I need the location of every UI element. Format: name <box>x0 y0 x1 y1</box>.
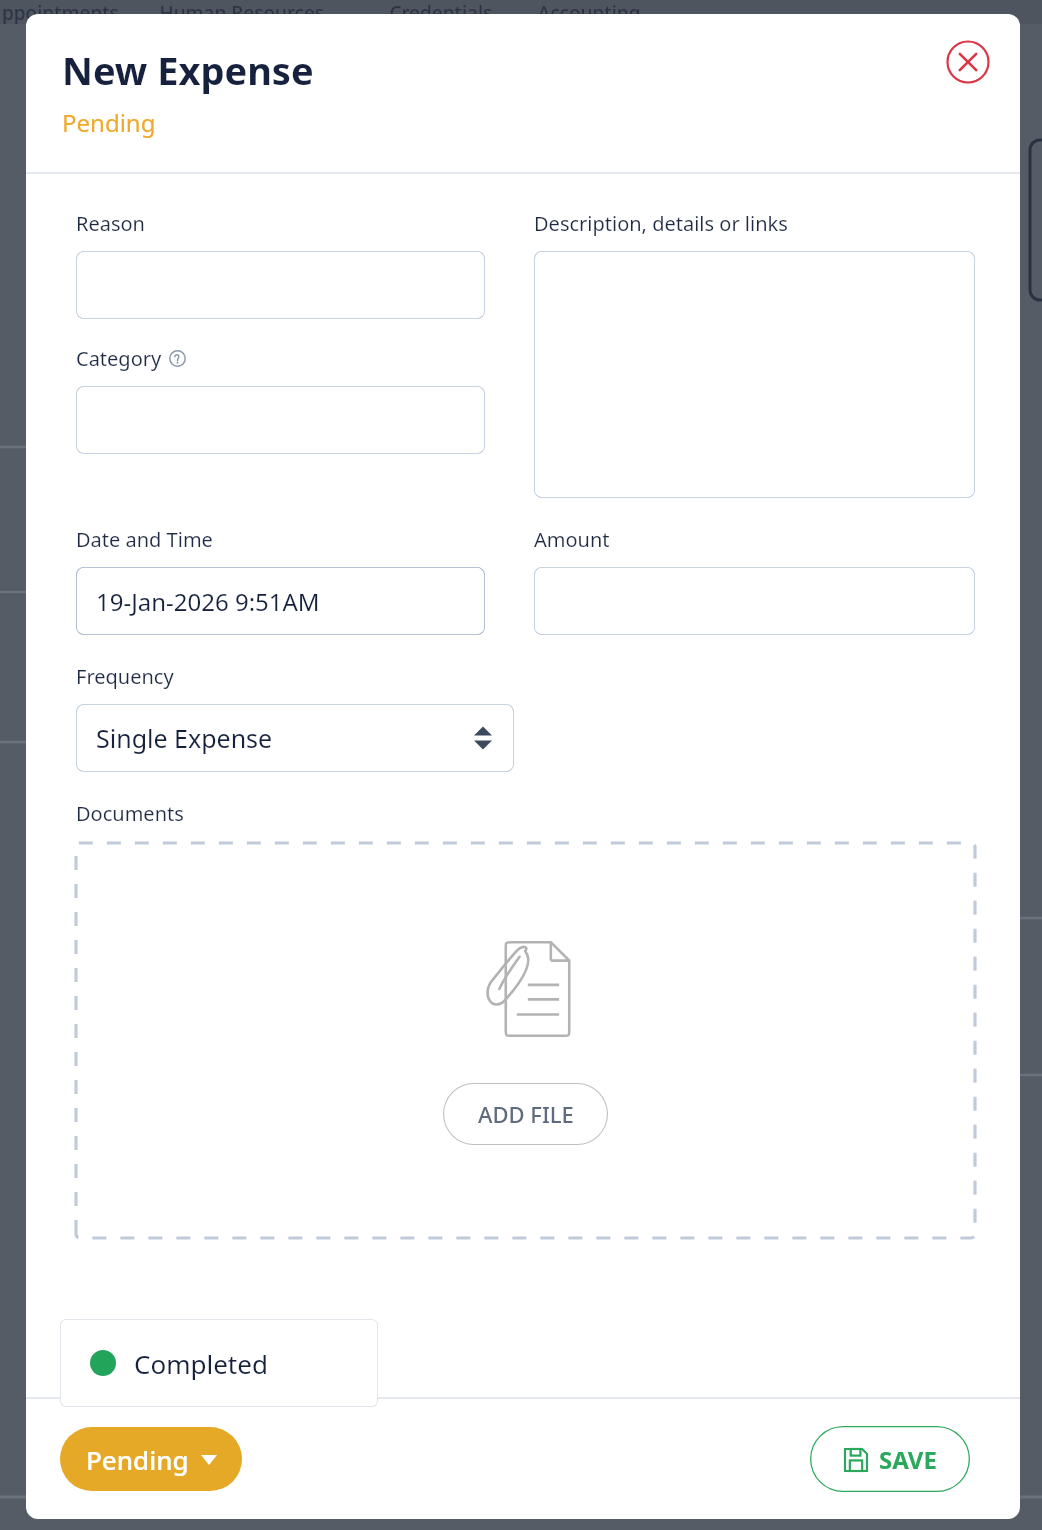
staticText: Frequency <box>76 663 174 690</box>
staticText: Date and Time <box>76 526 213 553</box>
staticText: ADD FILE <box>478 1099 574 1129</box>
button[interactable]: Completed <box>60 1319 378 1407</box>
staticText: New Expense <box>62 44 314 96</box>
button[interactable]: ADD FILE <box>76 843 975 1238</box>
button[interactable] <box>76 386 485 454</box>
button[interactable]: SAVE <box>810 1426 970 1492</box>
staticText: Pending <box>86 1442 189 1477</box>
staticText: Reason <box>76 210 145 237</box>
button[interactable]: 19-Jan-2026 9:51AM <box>76 567 485 635</box>
staticText: Pending <box>62 106 156 139</box>
button[interactable]: Close <box>944 38 992 86</box>
button[interactable]: Single Expense <box>76 704 514 772</box>
button[interactable] <box>534 251 975 498</box>
staticText: Category <box>76 345 162 372</box>
staticText: Single Expense <box>96 721 273 755</box>
button[interactable] <box>76 251 485 319</box>
staticText: Amount <box>534 526 610 553</box>
staticText: ppointments ⌄ Human Resources ⌄ Credenti… <box>2 0 662 24</box>
button[interactable] <box>534 567 975 635</box>
staticText: Description, details or links <box>534 210 788 237</box>
staticText: 19-Jan-2026 9:51AM <box>96 585 320 618</box>
staticText: Documents <box>76 800 184 827</box>
staticText: SAVE <box>879 1443 937 1476</box>
button[interactable]: Pending <box>60 1427 242 1491</box>
staticText: Completed <box>134 1346 268 1381</box>
button[interactable]: ADD FILE <box>443 1083 608 1145</box>
